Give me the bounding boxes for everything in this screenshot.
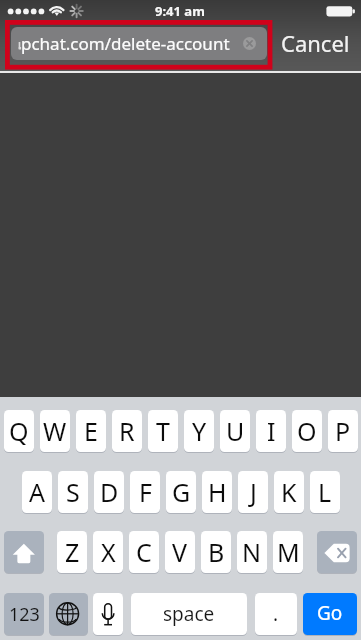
button[interactable]: W (40, 410, 70, 452)
staticText: L (318, 475, 332, 509)
staticText: J (250, 475, 257, 509)
staticText: O (297, 414, 317, 448)
staticText: 9:41 am (155, 2, 205, 20)
button[interactable]: H (202, 471, 232, 513)
staticText: D (100, 475, 119, 509)
staticText: M (277, 535, 300, 569)
staticText: X (101, 535, 116, 569)
button[interactable]: Go (303, 593, 357, 635)
button[interactable]: N (237, 531, 267, 573)
button[interactable]: Z (57, 531, 87, 573)
staticText: W (43, 414, 67, 448)
button[interactable]: D (94, 471, 124, 513)
staticText: B (208, 535, 225, 569)
button[interactable]: 123 (4, 593, 44, 635)
button[interactable]: Cancel (272, 24, 358, 61)
button[interactable]: A (22, 471, 52, 513)
button[interactable]: V (165, 531, 195, 573)
button[interactable]: pchat.com/delete-account (11, 27, 267, 60)
button[interactable]: J (238, 471, 268, 513)
staticText: G (172, 475, 191, 509)
button[interactable]: R (112, 410, 142, 452)
staticText: A (29, 475, 45, 509)
staticText: . (273, 601, 279, 627)
button[interactable]: G (166, 471, 196, 513)
button[interactable]: K (274, 471, 304, 513)
staticText: P (335, 414, 351, 448)
staticText: 123 (9, 602, 40, 627)
staticText: S (66, 475, 80, 509)
button[interactable]: B (201, 531, 231, 573)
staticText: U (226, 414, 245, 448)
button[interactable]: U (220, 410, 250, 452)
staticText: Q (9, 414, 29, 448)
button[interactable]: Clear text (243, 37, 256, 50)
button[interactable]: Next keyboard (49, 593, 88, 635)
button[interactable]: P (328, 410, 358, 452)
staticText: pchat.com/delete-account (21, 32, 230, 55)
button[interactable]: Shift (4, 531, 44, 573)
button[interactable]: I (256, 410, 286, 452)
staticText: V (172, 535, 188, 569)
staticText: space (163, 601, 215, 627)
staticText: I (267, 414, 276, 448)
button[interactable]: O (292, 410, 322, 452)
staticText: Cancel (281, 28, 350, 58)
staticText: K (281, 475, 297, 509)
staticText: T (156, 414, 170, 448)
staticText: R (119, 414, 135, 448)
button[interactable]: E (76, 410, 106, 452)
staticText: N (242, 535, 262, 569)
button[interactable]: M (273, 531, 303, 573)
staticText: E (84, 414, 98, 448)
button[interactable]: Y (184, 410, 214, 452)
button[interactable]: F (130, 471, 160, 513)
staticText: F (139, 475, 152, 509)
button[interactable]: T (148, 410, 178, 452)
button[interactable]: L (310, 471, 340, 513)
staticText: Y (192, 414, 207, 448)
staticText: C (136, 535, 152, 569)
button[interactable]: Backspace (317, 531, 357, 573)
button[interactable]: . (255, 593, 297, 635)
button[interactable]: S (58, 471, 88, 513)
button[interactable]: Dictate (93, 593, 123, 635)
button[interactable]: X (93, 531, 123, 573)
staticText: H (208, 475, 227, 509)
staticText: Z (65, 535, 80, 569)
button[interactable]: C (129, 531, 159, 573)
button[interactable]: Q (4, 410, 34, 452)
button[interactable]: space (131, 593, 247, 635)
staticText: Go (317, 600, 343, 626)
